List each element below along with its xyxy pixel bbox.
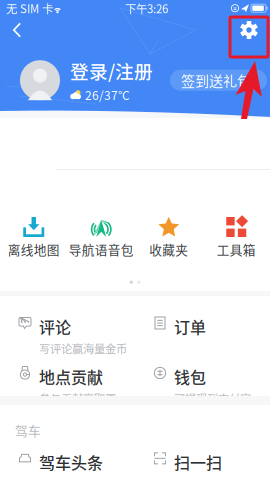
staticText: 钱包: [174, 365, 206, 388]
staticText: 收藏夹: [149, 240, 188, 258]
staticText: 评论: [39, 315, 71, 338]
staticText: 驾车头条: [39, 450, 103, 473]
button[interactable]: 驾车头条: [0, 439, 135, 479]
staticText: 离线地图: [8, 240, 60, 258]
button[interactable]: 签到送礼包: [170, 70, 267, 91]
button[interactable]: 收藏夹: [135, 217, 202, 258]
staticText: 订单: [174, 315, 206, 338]
staticText: 扫一扫: [174, 450, 222, 473]
staticText: 可提现到支付宝...: [174, 390, 260, 407]
button[interactable]: 导航语音包: [67, 217, 135, 258]
button[interactable]: 设置: [228, 15, 270, 45]
staticText: 参与贡献赢取更多...: [39, 390, 131, 407]
button[interactable]: 评论: [0, 296, 135, 346]
button[interactable]: 工具箱: [202, 217, 270, 258]
button[interactable]: 返回: [0, 14, 34, 46]
staticText: 登录/注册: [70, 57, 153, 84]
staticText: 无 SIM 卡: [6, 0, 53, 16]
button[interactable]: 钱包: [135, 346, 270, 396]
staticText: 签到送礼包: [181, 70, 251, 90]
staticText: 写评论赢海量金币: [39, 340, 127, 357]
staticText: 工具箱: [217, 240, 256, 258]
staticText: 地点贡献: [39, 365, 103, 388]
staticText: 26/37°C: [85, 86, 130, 103]
button[interactable]: 离线地图: [0, 217, 67, 258]
staticText: 下午3:26: [125, 0, 168, 16]
button[interactable]: 地点贡献: [0, 346, 135, 396]
staticText: 驾车: [15, 421, 41, 439]
button[interactable]: 订单: [135, 296, 270, 346]
staticText: 导航语音包: [69, 240, 134, 258]
button[interactable]: 扫一扫: [135, 439, 270, 479]
